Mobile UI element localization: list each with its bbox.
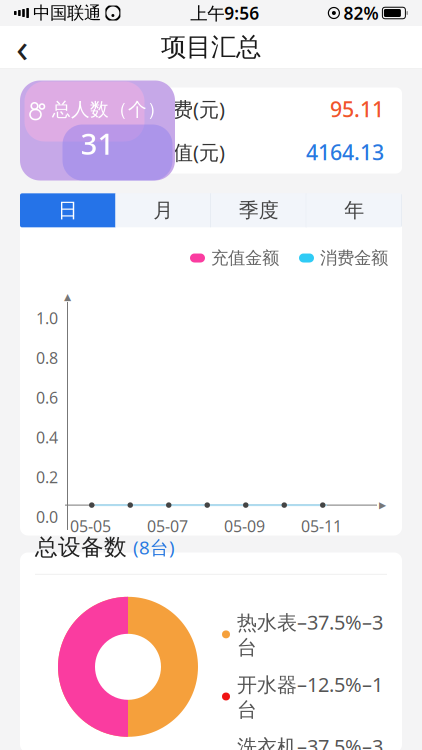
staticText: 05-05 (70, 515, 111, 537)
staticText: 总设备数 (35, 533, 127, 561)
staticText: 0.2 (36, 466, 58, 488)
staticText: 05-11 (301, 515, 342, 537)
staticText: 总充值(元) (133, 139, 225, 165)
staticText: 82% (343, 1, 378, 24)
button[interactable]: 年 (306, 193, 402, 227)
staticText: 0.4 (36, 427, 58, 448)
staticText: 上午9:56 (190, 1, 259, 24)
staticText: 总人数（个） (52, 98, 166, 121)
staticText: 季度 (239, 198, 279, 223)
staticText: 1.0 (36, 307, 58, 328)
staticText: 充值金额 (211, 247, 279, 269)
staticText: 开水器–12.5%–1台 (237, 671, 383, 722)
button[interactable]: 季度 (211, 193, 306, 227)
staticText: 4164.13 (306, 138, 384, 166)
staticText: (8台) (133, 535, 175, 560)
staticText: 05-07 (147, 515, 188, 537)
staticText: 05-09 (224, 515, 265, 537)
staticText: ▶ (379, 500, 386, 510)
staticText: 项目汇总 (161, 31, 261, 62)
staticText: 年 (344, 198, 364, 223)
button[interactable]: 日 (20, 193, 115, 227)
staticText: 95.11 (330, 95, 384, 123)
staticText: ‹ (16, 20, 28, 73)
staticText: 消费金额 (320, 247, 388, 269)
button[interactable]: 月 (115, 193, 211, 227)
button[interactable]: 返回 (0, 26, 44, 68)
staticText: 总消费(元) (133, 96, 225, 122)
staticText: 洗衣机–37.5%–3台 (237, 733, 383, 750)
staticText: 0.0 (36, 506, 58, 527)
staticText: 0.8 (36, 347, 58, 368)
staticText: 月 (153, 198, 173, 223)
staticText: 0.6 (36, 387, 58, 408)
staticText: 热水表–37.5%–3台 (237, 609, 383, 660)
staticText: 日 (58, 198, 78, 223)
staticText: 中国联通 (33, 2, 101, 24)
staticText: ▲ (64, 291, 71, 302)
staticText: 31 (80, 124, 114, 163)
